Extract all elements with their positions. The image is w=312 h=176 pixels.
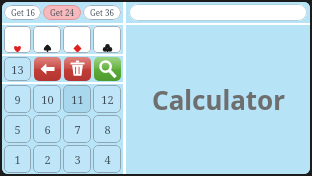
button[interactable]: 7 <box>63 115 91 143</box>
button[interactable]: 9 <box>4 85 31 113</box>
staticText: 1 <box>14 152 21 167</box>
button[interactable]: 4 <box>93 145 121 173</box>
staticText: Get 16 <box>11 7 35 18</box>
staticText: 9 <box>14 92 21 107</box>
button[interactable]: 12 <box>93 85 121 113</box>
button[interactable]: 13 <box>4 57 31 81</box>
staticText: Get 24 <box>50 7 74 18</box>
button[interactable]: 6 <box>33 115 61 143</box>
staticText: 2 <box>44 152 51 167</box>
button[interactable]: Search <box>94 57 121 81</box>
button[interactable]: HEART <box>4 26 31 53</box>
staticText: 13 <box>11 62 24 77</box>
button[interactable]: 11 <box>63 85 91 113</box>
staticText: 4 <box>104 152 111 167</box>
button[interactable]: Get 24 <box>43 5 81 20</box>
button[interactable]: 5 <box>4 115 31 143</box>
button[interactable]: Get 16 <box>4 5 41 20</box>
staticText: 5 <box>14 122 21 137</box>
button[interactable]: SPADE <box>33 26 61 53</box>
staticText: 12 <box>101 92 114 107</box>
staticText: Get 36 <box>90 7 114 18</box>
staticText: 8 <box>104 122 111 137</box>
staticText: 7 <box>74 122 81 137</box>
button[interactable] <box>129 4 307 21</box>
button[interactable]: Get 36 <box>83 5 121 20</box>
staticText: 3 <box>74 152 81 167</box>
button[interactable]: Undo <box>34 57 61 81</box>
button[interactable]: 10 <box>33 85 61 113</box>
button[interactable]: 1 <box>4 145 31 173</box>
button[interactable]: 3 <box>63 145 91 173</box>
button[interactable]: CLUB <box>93 26 121 53</box>
button[interactable]: Delete <box>64 57 91 81</box>
staticText: 11 <box>71 92 84 107</box>
staticText: 10 <box>41 92 54 107</box>
staticText: 6 <box>44 122 51 137</box>
button[interactable]: DIAMOND <box>63 26 91 53</box>
staticText: Calculator <box>152 82 285 117</box>
button[interactable]: 2 <box>33 145 61 173</box>
button[interactable]: 8 <box>93 115 121 143</box>
